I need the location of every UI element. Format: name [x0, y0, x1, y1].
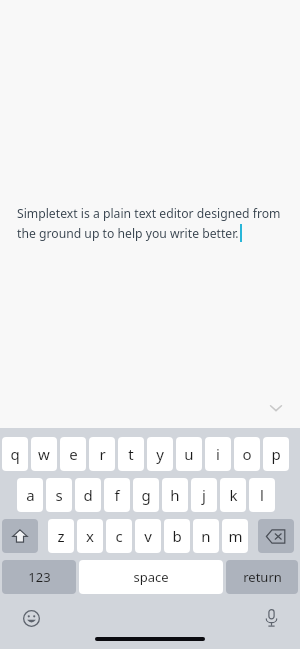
button[interactable]: x [77, 519, 103, 553]
staticText: t [128, 444, 134, 464]
button[interactable]: h [162, 478, 188, 512]
button[interactable]: b [164, 519, 190, 553]
staticText: w [38, 444, 50, 464]
staticText: x [86, 526, 94, 546]
staticText: m [228, 526, 243, 546]
button[interactable]: r [89, 437, 115, 471]
staticText: n [201, 526, 211, 546]
staticText: u [184, 444, 194, 464]
button[interactable]: p [263, 437, 289, 471]
button[interactable]: Shift [2, 519, 38, 553]
staticText: j [202, 485, 206, 505]
button[interactable]: w [31, 437, 57, 471]
button[interactable]: Voice input [256, 603, 286, 633]
button[interactable]: y [147, 437, 173, 471]
button[interactable]: g [133, 478, 159, 512]
button[interactable]: z [48, 519, 74, 553]
staticText: return [243, 568, 282, 586]
staticText: p [271, 444, 281, 464]
button[interactable]: a [17, 478, 43, 512]
button[interactable]: m [222, 519, 248, 553]
staticText: h [170, 485, 180, 505]
button[interactable]: q [2, 437, 28, 471]
staticText: v [144, 526, 152, 546]
button[interactable]: return [226, 560, 298, 594]
staticText: c [115, 526, 123, 546]
button[interactable]: n [193, 519, 219, 553]
staticText: b [172, 526, 182, 546]
staticText: l [260, 485, 264, 505]
staticText: d [83, 485, 93, 505]
staticText: 123 [28, 568, 51, 586]
button[interactable]: i [205, 437, 231, 471]
staticText: r [99, 444, 106, 464]
button[interactable]: o [234, 437, 260, 471]
button[interactable]: k [220, 478, 246, 512]
staticText: g [141, 485, 151, 505]
staticText: a [26, 485, 35, 505]
button[interactable]: 123 [2, 560, 76, 594]
button[interactable]: v [135, 519, 161, 553]
button[interactable]: t [118, 437, 144, 471]
staticText: space [133, 568, 169, 586]
staticText: q [10, 444, 20, 464]
button[interactable]: e [60, 437, 86, 471]
staticText: y [156, 444, 164, 464]
staticText: Simpletext is a plain text editor design… [17, 205, 281, 222]
button[interactable]: Hide keyboard [264, 396, 288, 420]
button[interactable]: Backspace [258, 519, 294, 553]
button[interactable]: j [191, 478, 217, 512]
staticText: s [55, 485, 63, 505]
staticText: z [57, 526, 65, 546]
staticText: f [114, 485, 120, 505]
staticText: k [229, 485, 238, 505]
button[interactable]: f [104, 478, 130, 512]
button[interactable]: space [79, 560, 223, 594]
staticText: the ground up to help you write better. [17, 225, 239, 242]
button[interactable]: s [46, 478, 72, 512]
staticText: e [69, 444, 78, 464]
button[interactable]: Emoji [16, 603, 46, 633]
button[interactable]: l [249, 478, 275, 512]
staticText: i [216, 444, 220, 464]
button[interactable]: d [75, 478, 101, 512]
button[interactable]: u [176, 437, 202, 471]
button[interactable]: c [106, 519, 132, 553]
staticText: o [242, 444, 252, 464]
